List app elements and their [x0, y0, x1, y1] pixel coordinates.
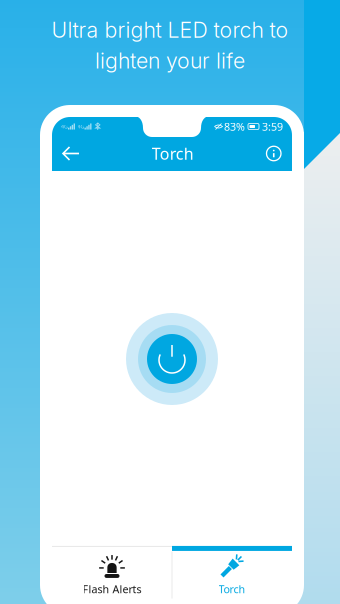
button[interactable]: Info [255, 136, 292, 171]
staticText: Torch [152, 143, 194, 164]
staticText: Ultra bright LED torch to [51, 17, 288, 43]
button[interactable]: Flash Alerts [52, 547, 172, 603]
staticText: 4G [61, 123, 68, 130]
staticText: Flash Alerts [82, 582, 141, 596]
button[interactable]: Back [52, 136, 90, 171]
staticText: 83% [224, 119, 245, 134]
staticText: lighten your life [95, 48, 245, 74]
button[interactable]: Toggle torch [126, 313, 218, 405]
staticText: 4G [77, 123, 84, 130]
staticText: Torch [218, 582, 245, 596]
button[interactable]: Torch [172, 547, 292, 603]
staticText: 3:59 [262, 119, 283, 134]
